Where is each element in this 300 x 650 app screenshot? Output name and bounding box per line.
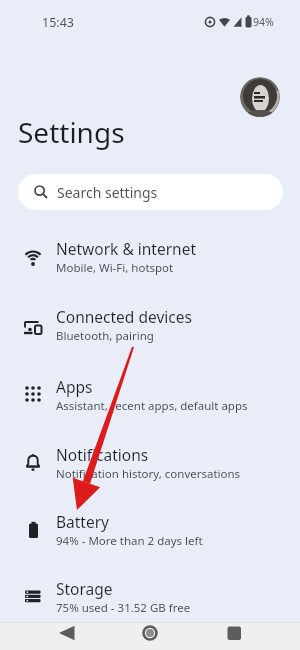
button[interactable]: Apps xyxy=(0,373,300,441)
staticText: Assistant, recent apps, default apps xyxy=(56,398,248,414)
button[interactable]: Network & internet xyxy=(0,235,300,303)
staticText: Settings xyxy=(18,113,125,151)
staticText: Search settings xyxy=(57,183,158,202)
staticText: Notification history, conversations xyxy=(56,466,241,482)
staticText: Battery xyxy=(56,511,110,532)
button[interactable] xyxy=(220,622,248,650)
button[interactable]: Search settings xyxy=(18,174,283,210)
staticText: Apps xyxy=(56,376,93,397)
button[interactable]: Connected devices xyxy=(0,303,300,371)
staticText: 94% - More than 2 days left xyxy=(56,533,203,549)
staticText: Notifications xyxy=(56,444,149,465)
button[interactable] xyxy=(136,622,164,650)
staticText: Mobile, Wi-Fi, hotspot xyxy=(56,260,174,276)
staticText: 75% used - 31.52 GB free xyxy=(56,600,191,616)
staticText: 15:43 xyxy=(42,14,74,31)
staticText: 94% xyxy=(253,15,274,29)
button[interactable] xyxy=(240,77,280,117)
button[interactable]: Battery xyxy=(0,508,300,576)
staticText: Storage xyxy=(56,578,113,599)
button[interactable]: Notifications xyxy=(0,441,300,509)
staticText: Network & internet xyxy=(56,238,196,259)
staticText: Connected devices xyxy=(56,306,192,327)
staticText: Bluetooth, pairing xyxy=(56,328,154,344)
button[interactable] xyxy=(52,622,80,650)
button[interactable]: Storage xyxy=(0,575,300,643)
